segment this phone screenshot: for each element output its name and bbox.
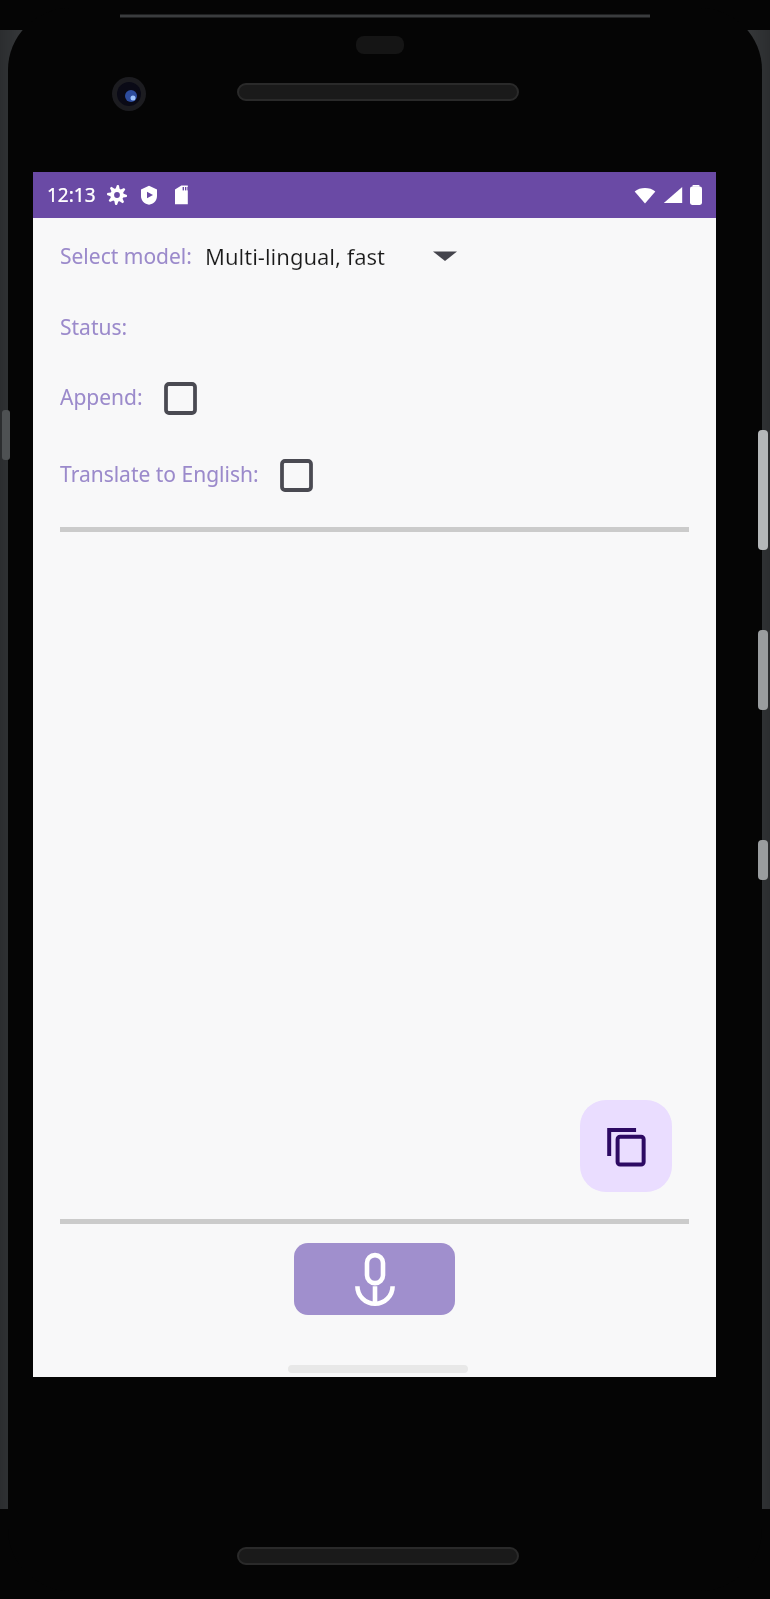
staticText: Status: xyxy=(60,313,128,342)
button[interactable]: Checkbox xyxy=(276,455,316,495)
button[interactable]: Checkbox xyxy=(160,378,200,418)
staticText: Append: xyxy=(60,383,143,412)
button[interactable]: Record xyxy=(294,1243,455,1315)
staticText: 12:13 xyxy=(47,182,96,208)
staticText: Multi-lingual, fast xyxy=(205,241,386,271)
staticText: Translate to English: xyxy=(60,460,259,489)
staticText: Select model: xyxy=(60,242,192,271)
button[interactable]: Multi-lingual, fast xyxy=(203,235,459,277)
button[interactable]: Copy xyxy=(580,1100,672,1192)
